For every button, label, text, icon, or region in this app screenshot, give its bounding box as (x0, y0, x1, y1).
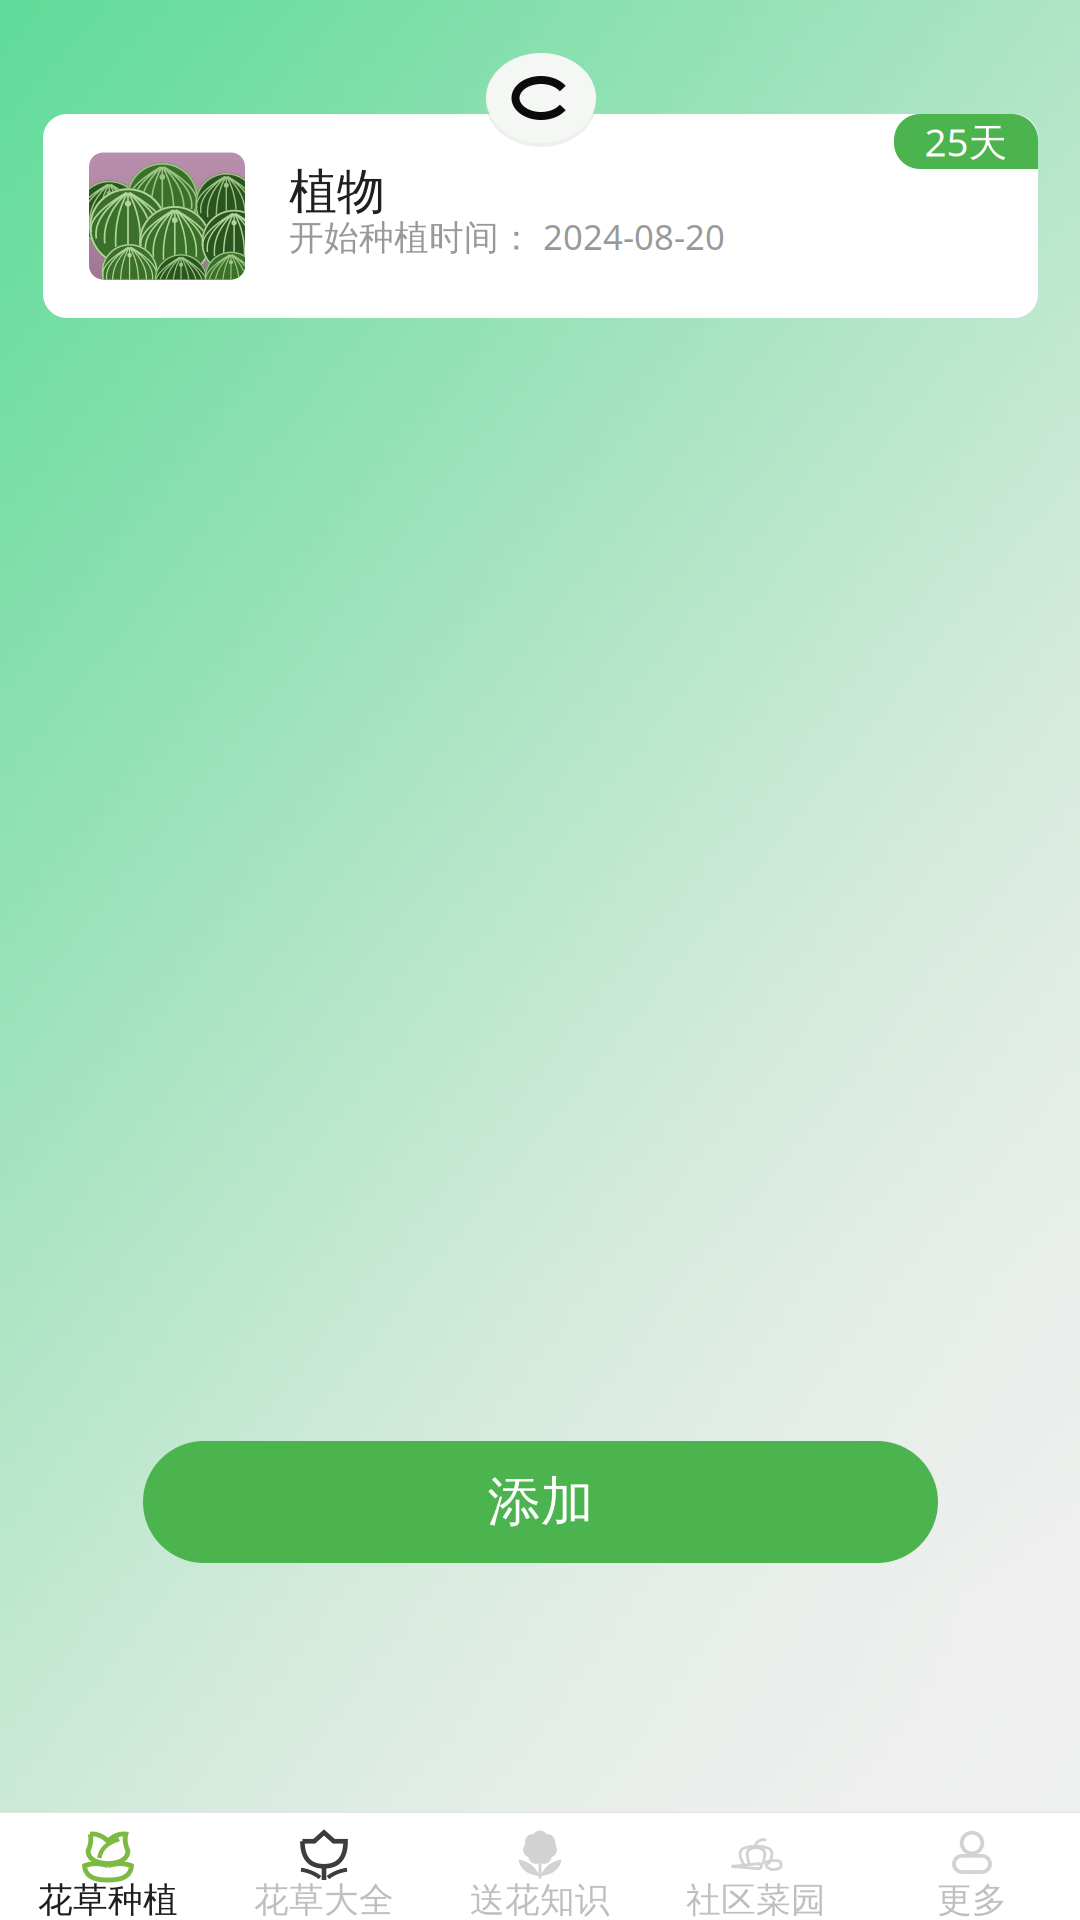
staticText: 花草种植 (38, 1879, 178, 1920)
staticText: 植物 (289, 162, 385, 221)
button[interactable]: 花草种植 (0, 1813, 216, 1920)
staticText: 社区菜园 (686, 1879, 826, 1920)
button[interactable]: 更多 (864, 1813, 1080, 1920)
staticText: 添加 (487, 1469, 593, 1535)
staticText: 花草大全 (254, 1879, 394, 1920)
button[interactable]: 花草大全 (216, 1813, 432, 1920)
staticText: 开始种植时间： 2024-08-20 (289, 213, 725, 259)
button[interactable]: 刷新 (485, 51, 597, 145)
staticText: 送花知识 (470, 1879, 610, 1920)
button[interactable]: 添加 (143, 1441, 938, 1563)
button[interactable]: 植物 (43, 114, 1038, 318)
button[interactable]: 社区菜园 (648, 1813, 864, 1920)
staticText: 25天 (924, 116, 1007, 167)
button[interactable]: 送花知识 (432, 1813, 648, 1920)
staticText: 更多 (937, 1879, 1007, 1920)
